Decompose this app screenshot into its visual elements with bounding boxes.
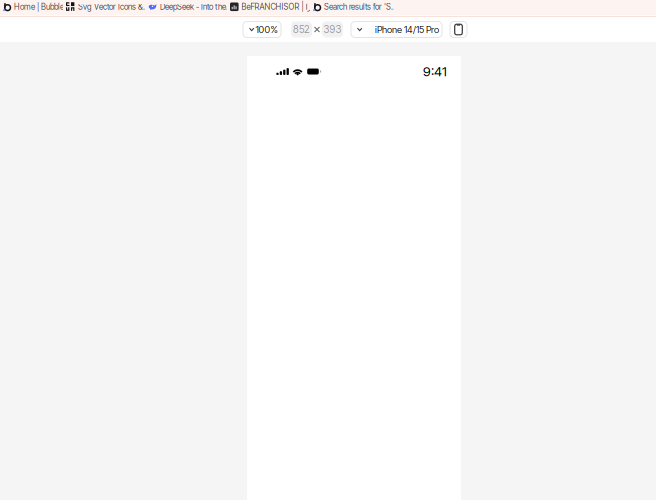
staticText: Home | Bubble — [14, 2, 64, 12]
staticText: 9:41 — [423, 63, 447, 79]
staticText: 393 — [323, 23, 341, 35]
staticText: 100% — [255, 24, 277, 35]
button[interactable]: 100% — [243, 21, 281, 37]
button[interactable]: 852 — [291, 21, 312, 37]
staticText: DeepSeek - Into the… — [160, 2, 232, 12]
staticText: 852 — [293, 23, 310, 35]
button[interactable]: Rotate device — [450, 21, 467, 37]
button[interactable]: BeFRANCHISOR | الرا… — [227, 0, 310, 13]
button[interactable]: Search results for 'S… — [310, 0, 394, 13]
staticText: Search results for 'S… — [324, 2, 397, 12]
button[interactable]: Svg Vector Icons &… — [63, 0, 145, 13]
button[interactable]: iPhone 14/15 Pro — [351, 21, 442, 37]
button[interactable]: Home | Bubble — [0, 0, 63, 13]
staticText: BeFRANCHISOR | الرا… — [242, 2, 322, 12]
staticText: Svg Vector Icons &… — [78, 2, 149, 12]
staticText: iPhone 14/15 Pro — [375, 24, 439, 35]
button[interactable]: DeepSeek - Into the… — [145, 0, 227, 13]
button[interactable]: 393 — [322, 21, 343, 37]
